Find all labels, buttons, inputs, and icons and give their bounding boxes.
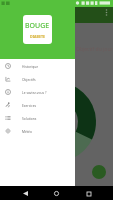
button[interactable]: Home xyxy=(50,187,63,200)
button[interactable]: Exercices xyxy=(0,98,75,111)
staticText: Objectifs xyxy=(22,77,36,81)
button[interactable]: Start activity xyxy=(92,165,106,179)
button[interactable]: More options xyxy=(105,9,108,16)
button[interactable]: Le saviez-vous ? xyxy=(0,85,75,98)
button[interactable]: Météo xyxy=(0,124,75,137)
button[interactable]: Historique xyxy=(0,59,75,72)
staticText: BOUGE xyxy=(25,21,50,31)
staticText: Le saviez-vous ? xyxy=(22,90,47,94)
staticText: Historique xyxy=(22,64,39,68)
button[interactable]: Solutions xyxy=(0,111,75,124)
button[interactable]: Back xyxy=(19,187,32,200)
staticText: DIABETE xyxy=(30,34,46,39)
button[interactable]: Objectifs xyxy=(0,72,75,85)
staticText: Exercices xyxy=(22,103,37,107)
staticText: Solutions xyxy=(22,116,37,120)
staticText: Météo xyxy=(22,129,32,133)
button[interactable]: Recents xyxy=(82,187,95,200)
